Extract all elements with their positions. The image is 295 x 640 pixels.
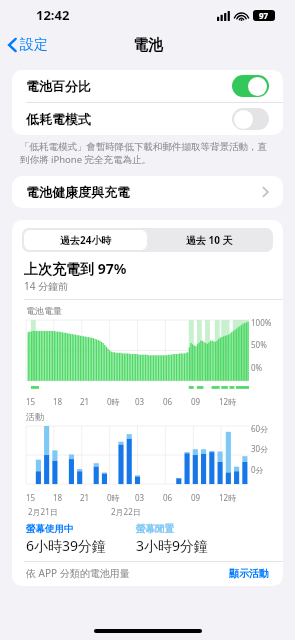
staticText: 電池 [133,36,163,55]
staticText: 低耗電模式 [26,111,232,127]
button[interactable]: 過去 10 天 [147,230,271,250]
button[interactable]: 顯示活動 [229,567,269,580]
staticText: 「低耗電模式」會暫時降低下載和郵件擷取等背景活動，直到你將 iPhone 完全充… [20,141,273,166]
staticText: 12時 [219,492,237,503]
staticText: 18 [53,396,63,407]
staticText: 0時 [107,492,120,503]
staticText: 0% [251,362,263,373]
staticText: 電池健康度與充電 [26,184,262,200]
staticText: 3小時9分鐘 [136,536,209,555]
staticText: 18 [53,492,63,503]
button[interactable]: 設定 [0,32,56,58]
staticText: 15 [26,396,36,407]
staticText: 過去 10 天 [186,233,233,247]
staticText: 50% [251,339,267,350]
staticText: 設定 [20,36,48,54]
staticText: 100% [251,317,272,328]
staticText: 過去24小時 [60,233,112,247]
staticText: 6小時39分鐘 [26,536,107,555]
staticText: 60分 [251,423,269,434]
staticText: 14 分鐘前 [24,279,69,293]
button[interactable]: 過去24小時 [24,230,147,250]
button[interactable]: 電池健康度與充電 [12,176,283,208]
staticText: 上次充電到 97% [24,259,127,278]
staticText: 30分 [251,443,269,454]
staticText: 電池百分比 [26,78,232,94]
staticText: 依 APP 分類的電池用量 [26,566,229,580]
staticText: 2月21日 [28,506,58,517]
staticText: 0分 [251,464,264,475]
staticText: 06 [163,492,173,503]
staticText: 螢幕閒置 [136,523,174,535]
staticText: 電池電量 [26,305,62,316]
staticText: 2月22日 [111,506,141,517]
staticText: 0時 [107,396,120,407]
staticText: 97 [259,10,269,21]
staticText: 螢幕使用中 [26,523,74,535]
staticText: 12:42 [36,6,70,24]
staticText: 03 [135,492,145,503]
button[interactable]: 低耗電模式 [12,103,283,135]
staticText: 09 [191,396,201,407]
staticText: 15 [26,492,36,503]
staticText: 03 [135,396,145,407]
staticText: 09 [191,492,201,503]
staticText: 21 [80,396,90,407]
staticText: 活動 [26,411,44,422]
staticText: 12時 [219,396,237,407]
staticText: 06 [163,396,173,407]
staticText: 21 [80,492,90,503]
button[interactable]: 電池百分比 [12,70,283,102]
